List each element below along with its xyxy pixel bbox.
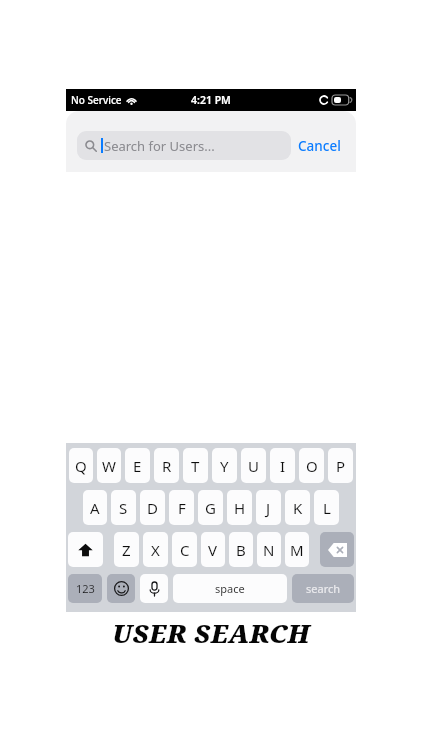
button[interactable]: F (169, 490, 194, 525)
button[interactable]: space (173, 574, 287, 603)
staticText: D (147, 498, 158, 518)
button[interactable]: B (229, 532, 253, 567)
staticText: G (205, 498, 216, 518)
staticText: X (151, 540, 160, 560)
staticText: O (306, 456, 318, 476)
button[interactable]: W (97, 448, 121, 483)
staticText: S (119, 498, 128, 518)
staticText: search (306, 581, 341, 596)
button[interactable]: M (285, 532, 309, 567)
button[interactable]: Z (114, 532, 139, 567)
button[interactable]: L (314, 490, 339, 525)
staticText: Search for Users... (104, 137, 215, 155)
staticText: space (215, 581, 245, 596)
staticText: A (90, 498, 100, 518)
button[interactable]: Q (69, 448, 93, 483)
button[interactable]: R (154, 448, 179, 483)
button[interactable]: U (241, 448, 266, 483)
staticText: F (178, 498, 186, 518)
button[interactable]: Emoji keyboard (107, 574, 135, 603)
staticText: Y (220, 456, 229, 476)
staticText: L (323, 498, 331, 518)
staticText: T (191, 456, 200, 476)
button[interactable]: Search for Users... (77, 131, 291, 160)
staticText: W (102, 456, 116, 476)
button[interactable]: N (257, 532, 281, 567)
staticText: V (208, 540, 218, 560)
button[interactable]: P (328, 448, 353, 483)
button[interactable]: D (140, 490, 165, 525)
button[interactable]: Cancel (291, 132, 348, 160)
staticText: J (266, 498, 271, 518)
staticText: K (293, 498, 303, 518)
staticText: 123 (76, 581, 95, 596)
button[interactable]: Delete (320, 532, 354, 567)
button[interactable]: T (183, 448, 208, 483)
staticText: U (248, 456, 259, 476)
button[interactable]: O (299, 448, 324, 483)
button[interactable]: A (83, 490, 107, 525)
staticText: R (162, 456, 172, 476)
button[interactable]: K (285, 490, 310, 525)
staticText: C (180, 540, 190, 560)
button[interactable]: Shift (68, 532, 103, 567)
button[interactable]: X (143, 532, 168, 567)
staticText: Z (122, 540, 131, 560)
staticText: M (290, 540, 304, 560)
staticText: H (234, 498, 246, 518)
button[interactable]: J (256, 490, 281, 525)
button[interactable]: search (292, 574, 354, 603)
staticText: 4:21 PM (191, 93, 231, 107)
staticText: I (280, 456, 286, 476)
button[interactable]: G (198, 490, 223, 525)
button[interactable]: S (111, 490, 136, 525)
staticText: E (133, 456, 142, 476)
staticText: USER SEARCH (0, 615, 422, 650)
staticText: P (336, 456, 346, 476)
staticText: Cancel (298, 137, 341, 155)
button[interactable]: E (125, 448, 150, 483)
button[interactable]: Y (212, 448, 237, 483)
button[interactable]: H (227, 490, 252, 525)
button[interactable]: 123 (68, 574, 102, 603)
button[interactable]: I (270, 448, 295, 483)
staticText: No Service (71, 93, 122, 107)
button[interactable]: V (201, 532, 225, 567)
staticText: B (236, 540, 246, 560)
staticText: Q (75, 456, 87, 476)
button[interactable]: C (172, 532, 197, 567)
button[interactable]: Dictation (140, 574, 168, 603)
staticText: N (263, 540, 275, 560)
